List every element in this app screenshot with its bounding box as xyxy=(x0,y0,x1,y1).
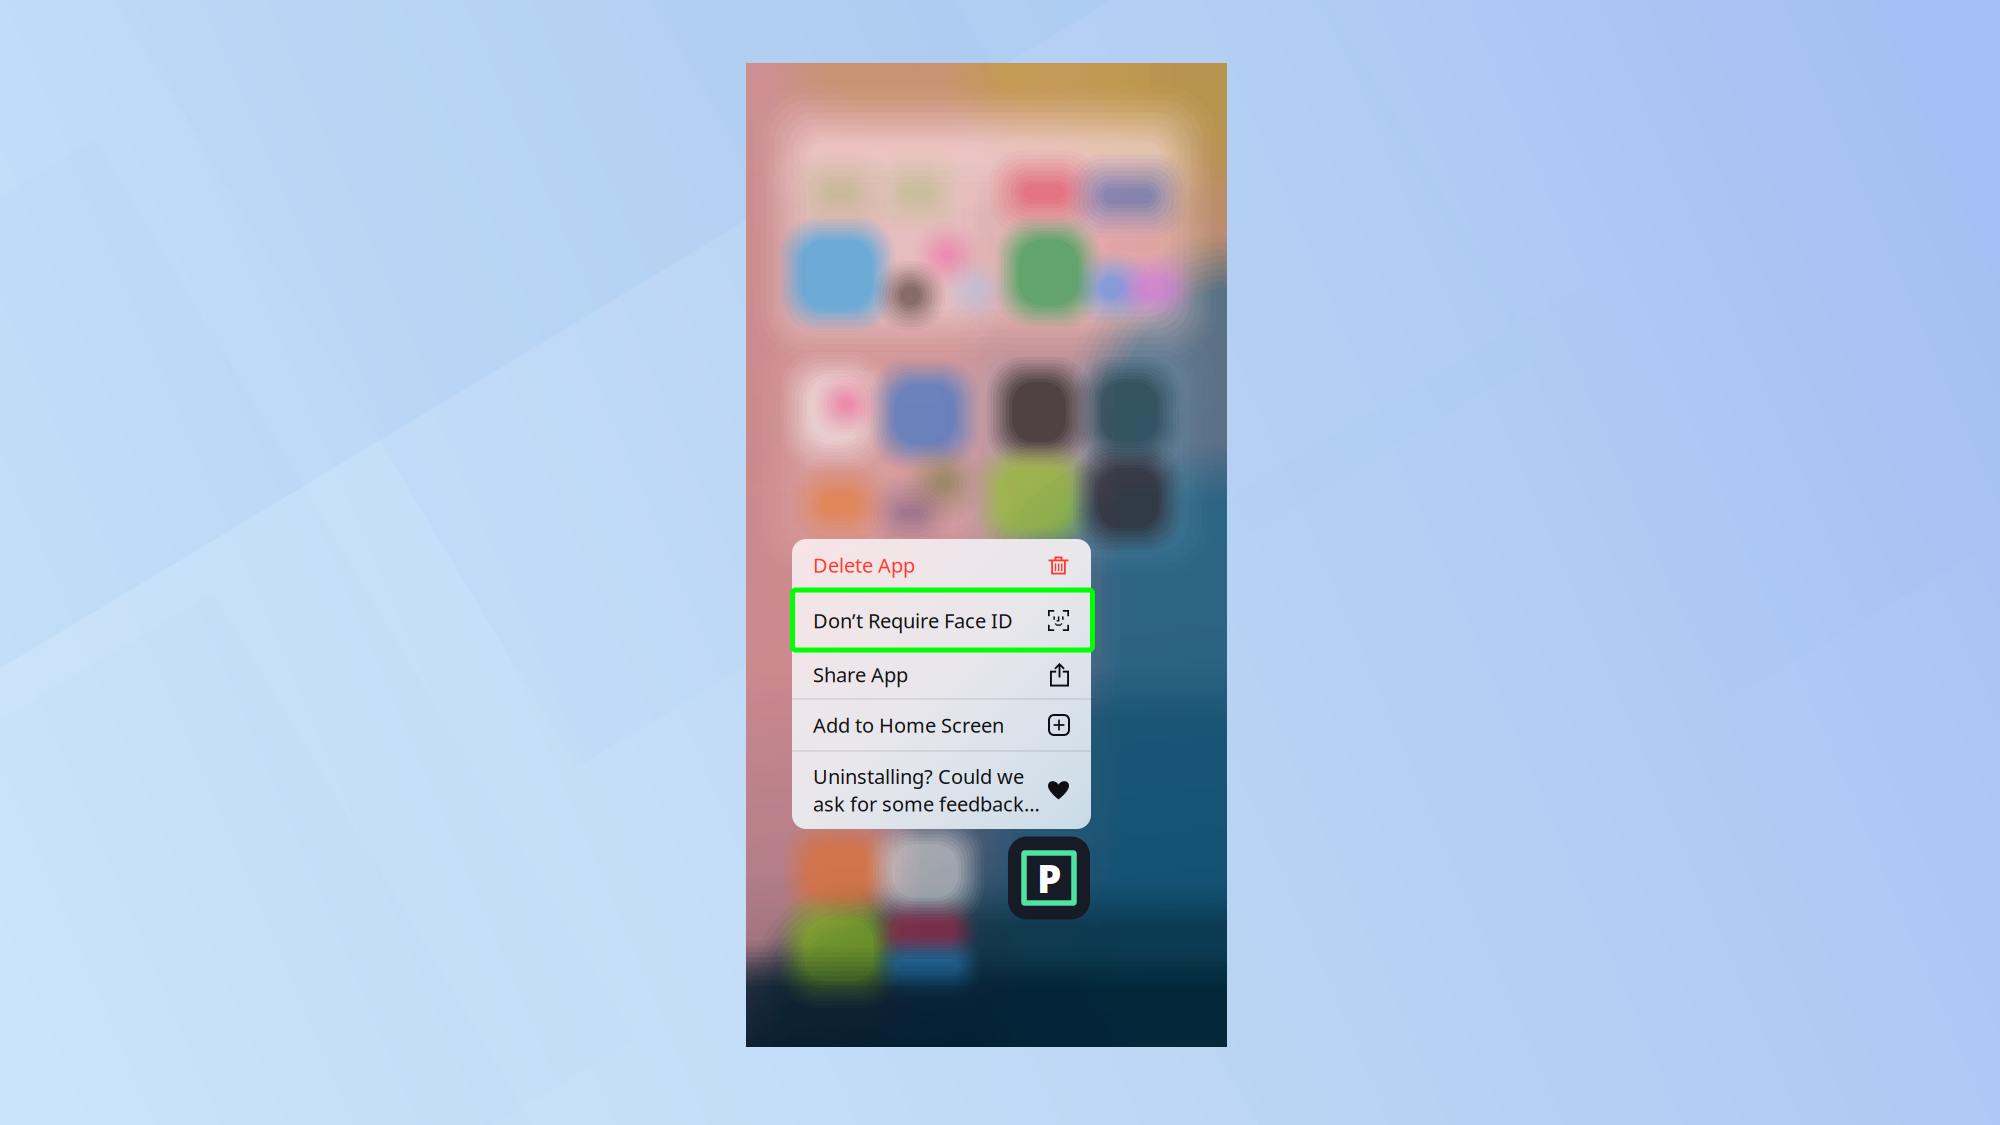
button[interactable]: Delete App xyxy=(792,539,1091,590)
staticText: Uninstalling? Could we xyxy=(813,763,1024,789)
staticText: P xyxy=(1037,852,1061,904)
staticText: Don’t Require Face ID xyxy=(813,607,1013,634)
button[interactable]: Share App xyxy=(792,650,1091,698)
staticText: ask for some feedback… xyxy=(813,790,1040,817)
button[interactable]: Add to Home Screen xyxy=(792,699,1091,750)
button[interactable]: Uninstalling? Could we xyxy=(792,751,1091,828)
staticText: Share App xyxy=(813,661,908,688)
staticText: Delete App xyxy=(813,552,915,578)
staticText: Add to Home Screen xyxy=(813,712,1004,738)
button[interactable]: Don’t Require Face ID xyxy=(792,590,1091,650)
